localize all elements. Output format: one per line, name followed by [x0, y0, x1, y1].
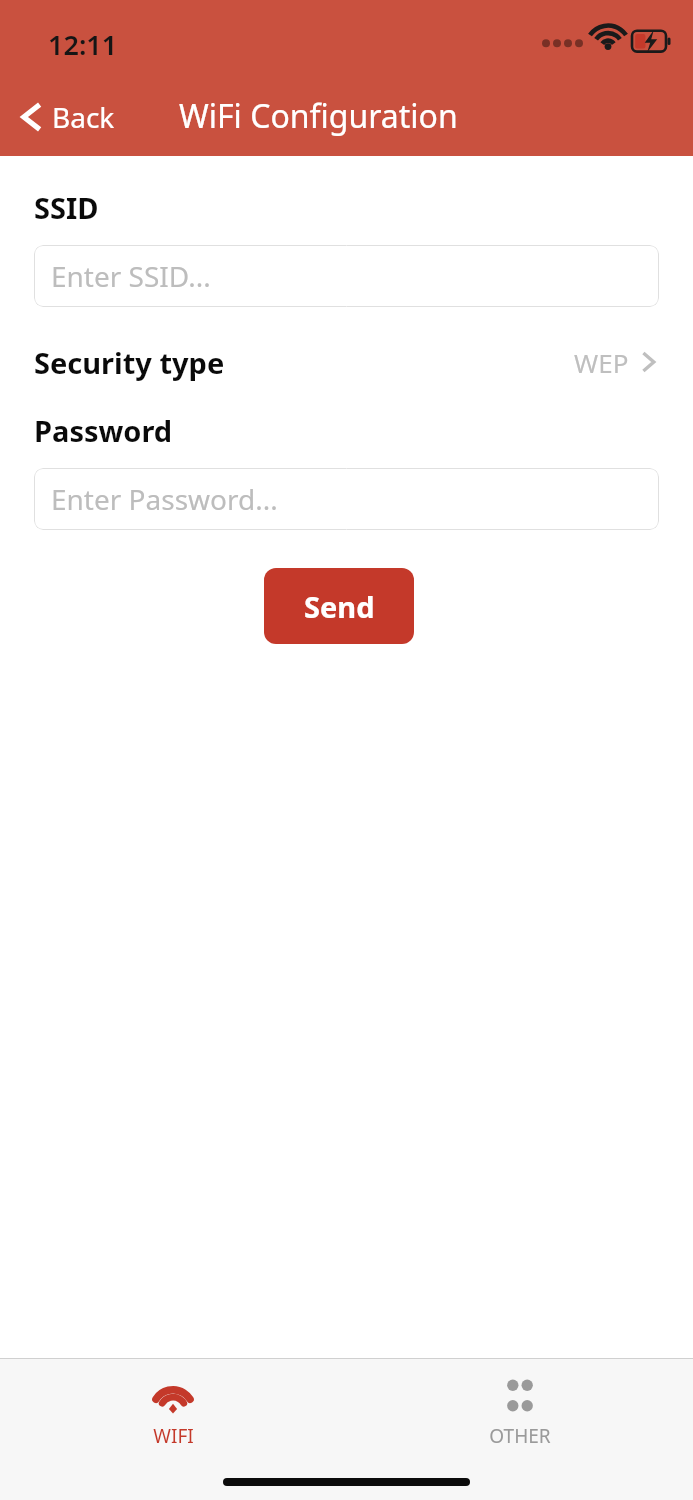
button[interactable]: Enter SSID...: [34, 245, 659, 307]
staticText: Password: [34, 411, 173, 450]
staticText: WiFi Configuration: [179, 94, 458, 138]
staticText: Enter SSID...: [51, 257, 211, 295]
staticText: WIFI: [153, 1423, 194, 1449]
staticText: Back: [52, 98, 115, 136]
button[interactable]: Back: [0, 86, 115, 148]
button[interactable]: Security type: [34, 339, 659, 385]
staticText: Send: [304, 587, 375, 626]
button[interactable]: Send: [264, 568, 414, 644]
staticText: Enter Password...: [51, 480, 278, 518]
button[interactable]: Other tab: [346, 1378, 693, 1449]
staticText: Security type: [34, 343, 225, 382]
staticText: OTHER: [489, 1423, 551, 1449]
button[interactable]: WiFi tab: [0, 1378, 346, 1449]
staticText: 12:11: [48, 26, 118, 63]
staticText: SSID: [34, 188, 99, 227]
staticText: WEP: [574, 345, 629, 380]
button[interactable]: Enter Password...: [34, 468, 659, 530]
